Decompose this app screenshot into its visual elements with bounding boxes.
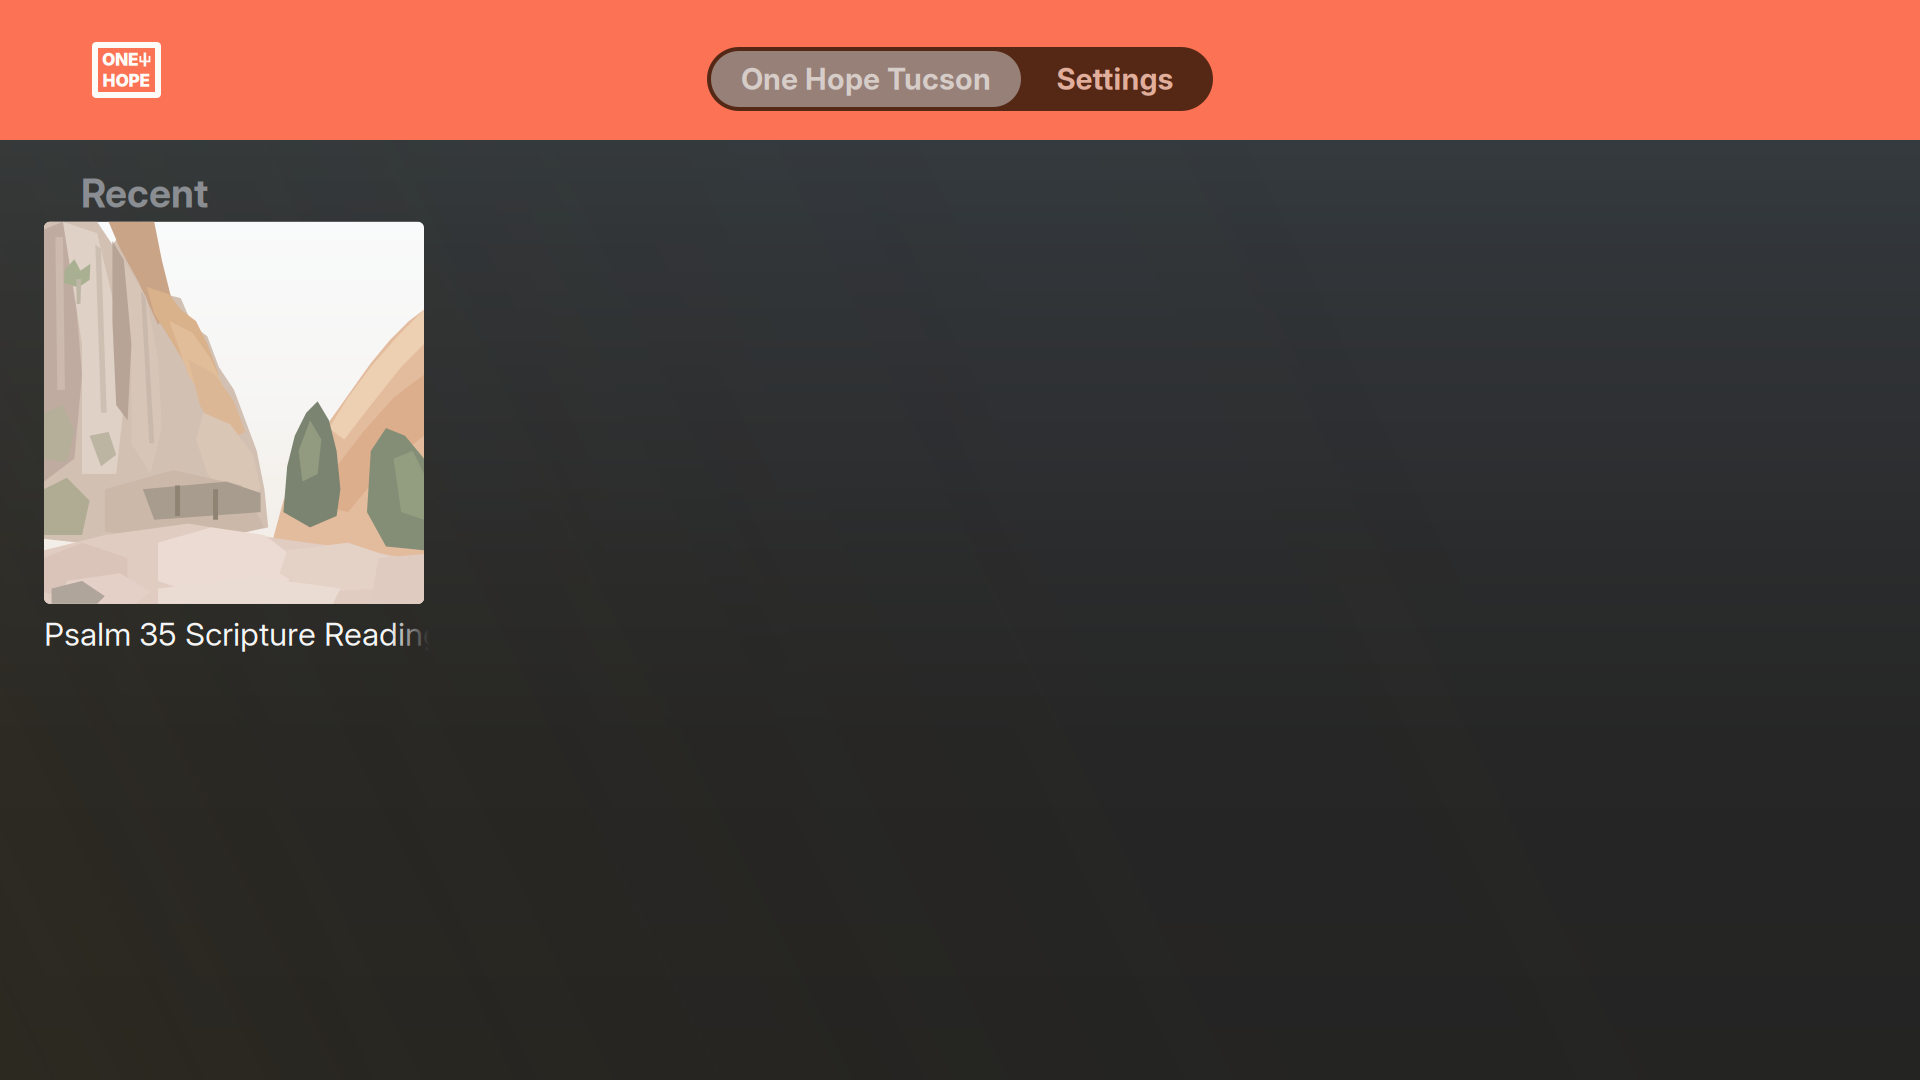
button[interactable]: Psalm 35 Scripture Reading bbox=[0, 217, 429, 653]
button[interactable]: One Hope bbox=[0, 45, 158, 95]
staticText: HOPE bbox=[102, 70, 150, 91]
staticText: Recent bbox=[81, 170, 208, 217]
button[interactable]: Settings bbox=[1021, 51, 1209, 107]
staticText: Settings bbox=[1056, 61, 1173, 97]
staticText: ONE bbox=[102, 49, 139, 70]
button[interactable]: One Hope Tucson bbox=[711, 51, 1021, 107]
staticText: One Hope Tucson bbox=[741, 61, 991, 97]
staticText: Psalm 35 Scripture Reading bbox=[44, 615, 442, 653]
